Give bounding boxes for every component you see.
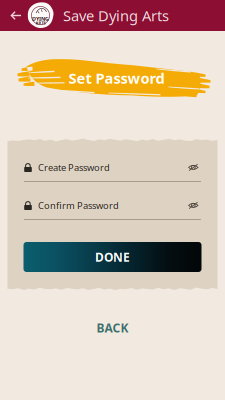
button[interactable]: Back (5, 0, 27, 31)
staticText: Create Password (38, 161, 110, 174)
staticText: DONE (95, 249, 130, 265)
button[interactable]: Show password (186, 161, 201, 174)
staticText: Save Dying Arts (63, 6, 169, 25)
button[interactable]: DONE (23, 242, 201, 272)
staticText: Set Password (68, 68, 164, 88)
button[interactable]: BACK (86, 317, 138, 339)
staticText: ARTS (35, 20, 45, 25)
staticText: DYING (32, 15, 49, 22)
button[interactable]: Show password (186, 199, 201, 212)
staticText: Confirm Password (38, 199, 119, 212)
staticText: BACK (96, 320, 128, 336)
